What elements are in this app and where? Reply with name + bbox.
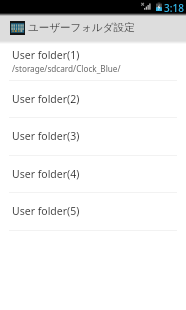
button[interactable]: ユーザーフォルダ設定 bbox=[0, 13, 186, 41]
button[interactable]: User folder(5) bbox=[0, 193, 186, 230]
staticText: User folder(1) bbox=[12, 48, 80, 62]
staticText: 3:18 bbox=[164, 1, 184, 14]
staticText: User folder(2) bbox=[12, 92, 80, 106]
button[interactable]: User folder(1) bbox=[0, 44, 186, 80]
staticText: /storage/sdcard/Clock_Blue/ bbox=[12, 63, 121, 74]
staticText: ユーザーフォルダ設定 bbox=[28, 21, 135, 34]
button[interactable]: User folder(4) bbox=[0, 156, 186, 192]
button[interactable]: User folder(3) bbox=[0, 118, 186, 155]
staticText: User folder(5) bbox=[12, 204, 80, 218]
button[interactable]: User folder(2) bbox=[0, 81, 186, 117]
staticText: User folder(3) bbox=[12, 129, 80, 143]
staticText: User folder(4) bbox=[12, 167, 80, 181]
